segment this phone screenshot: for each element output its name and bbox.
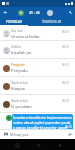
button[interactable]: More options xyxy=(66,7,75,17)
staticText: Kitapva xyxy=(11,86,25,91)
staticText: 06:15 xyxy=(62,30,70,34)
staticText: Inşallah ya xyxy=(11,50,32,55)
staticText: 06:16 xyxy=(65,125,72,129)
button[interactable]: Nazlıca İçin xyxy=(0,77,75,95)
staticText: YORUMLAR xyxy=(6,20,22,24)
button[interactable]: YORUMLAR xyxy=(0,17,28,26)
button[interactable]: Periyodu xyxy=(0,59,75,77)
staticText: 06:15 xyxy=(62,45,70,49)
button[interactable]: İnsanların kendilerini küçümsemesine ned… xyxy=(12,114,73,130)
button[interactable]: Send xyxy=(66,130,74,138)
staticText: 06:16 xyxy=(62,99,70,103)
button[interactable]: Camera xyxy=(2,130,10,138)
button[interactable]: Odella xyxy=(0,41,75,59)
staticText: Nazlıca İçin xyxy=(11,99,28,103)
button[interactable]: Home xyxy=(34,141,42,149)
staticText: Periyodu xyxy=(11,63,25,67)
staticText: 45 : 46 xyxy=(29,10,40,15)
button[interactable]: Back xyxy=(55,141,63,149)
staticText: 06:15 xyxy=(62,81,70,85)
staticText: Odella xyxy=(11,45,21,49)
staticText: İnsanların kendilerini küçümsemesine ned… xyxy=(13,115,72,130)
staticText: ÖNERİLENLER xyxy=(42,20,62,24)
button[interactable]: Nazlıca İçin xyxy=(0,95,75,113)
staticText: O çocukları xyxy=(11,104,32,109)
staticText: Nazlıca İçin xyxy=(11,81,28,85)
staticText: Gra Sok xyxy=(11,29,23,33)
button[interactable]: Gra Sok xyxy=(0,26,75,41)
staticText: 06:15 xyxy=(62,63,70,67)
staticText: Mesaj yaz xyxy=(10,132,29,137)
button[interactable]: Recents xyxy=(13,141,21,149)
button[interactable]: Back xyxy=(0,7,10,17)
staticText: Oruçta urfalılar xyxy=(11,34,40,39)
staticText: Periyodu xyxy=(11,68,28,73)
button[interactable]: ÖNERİLENLER xyxy=(28,17,75,26)
